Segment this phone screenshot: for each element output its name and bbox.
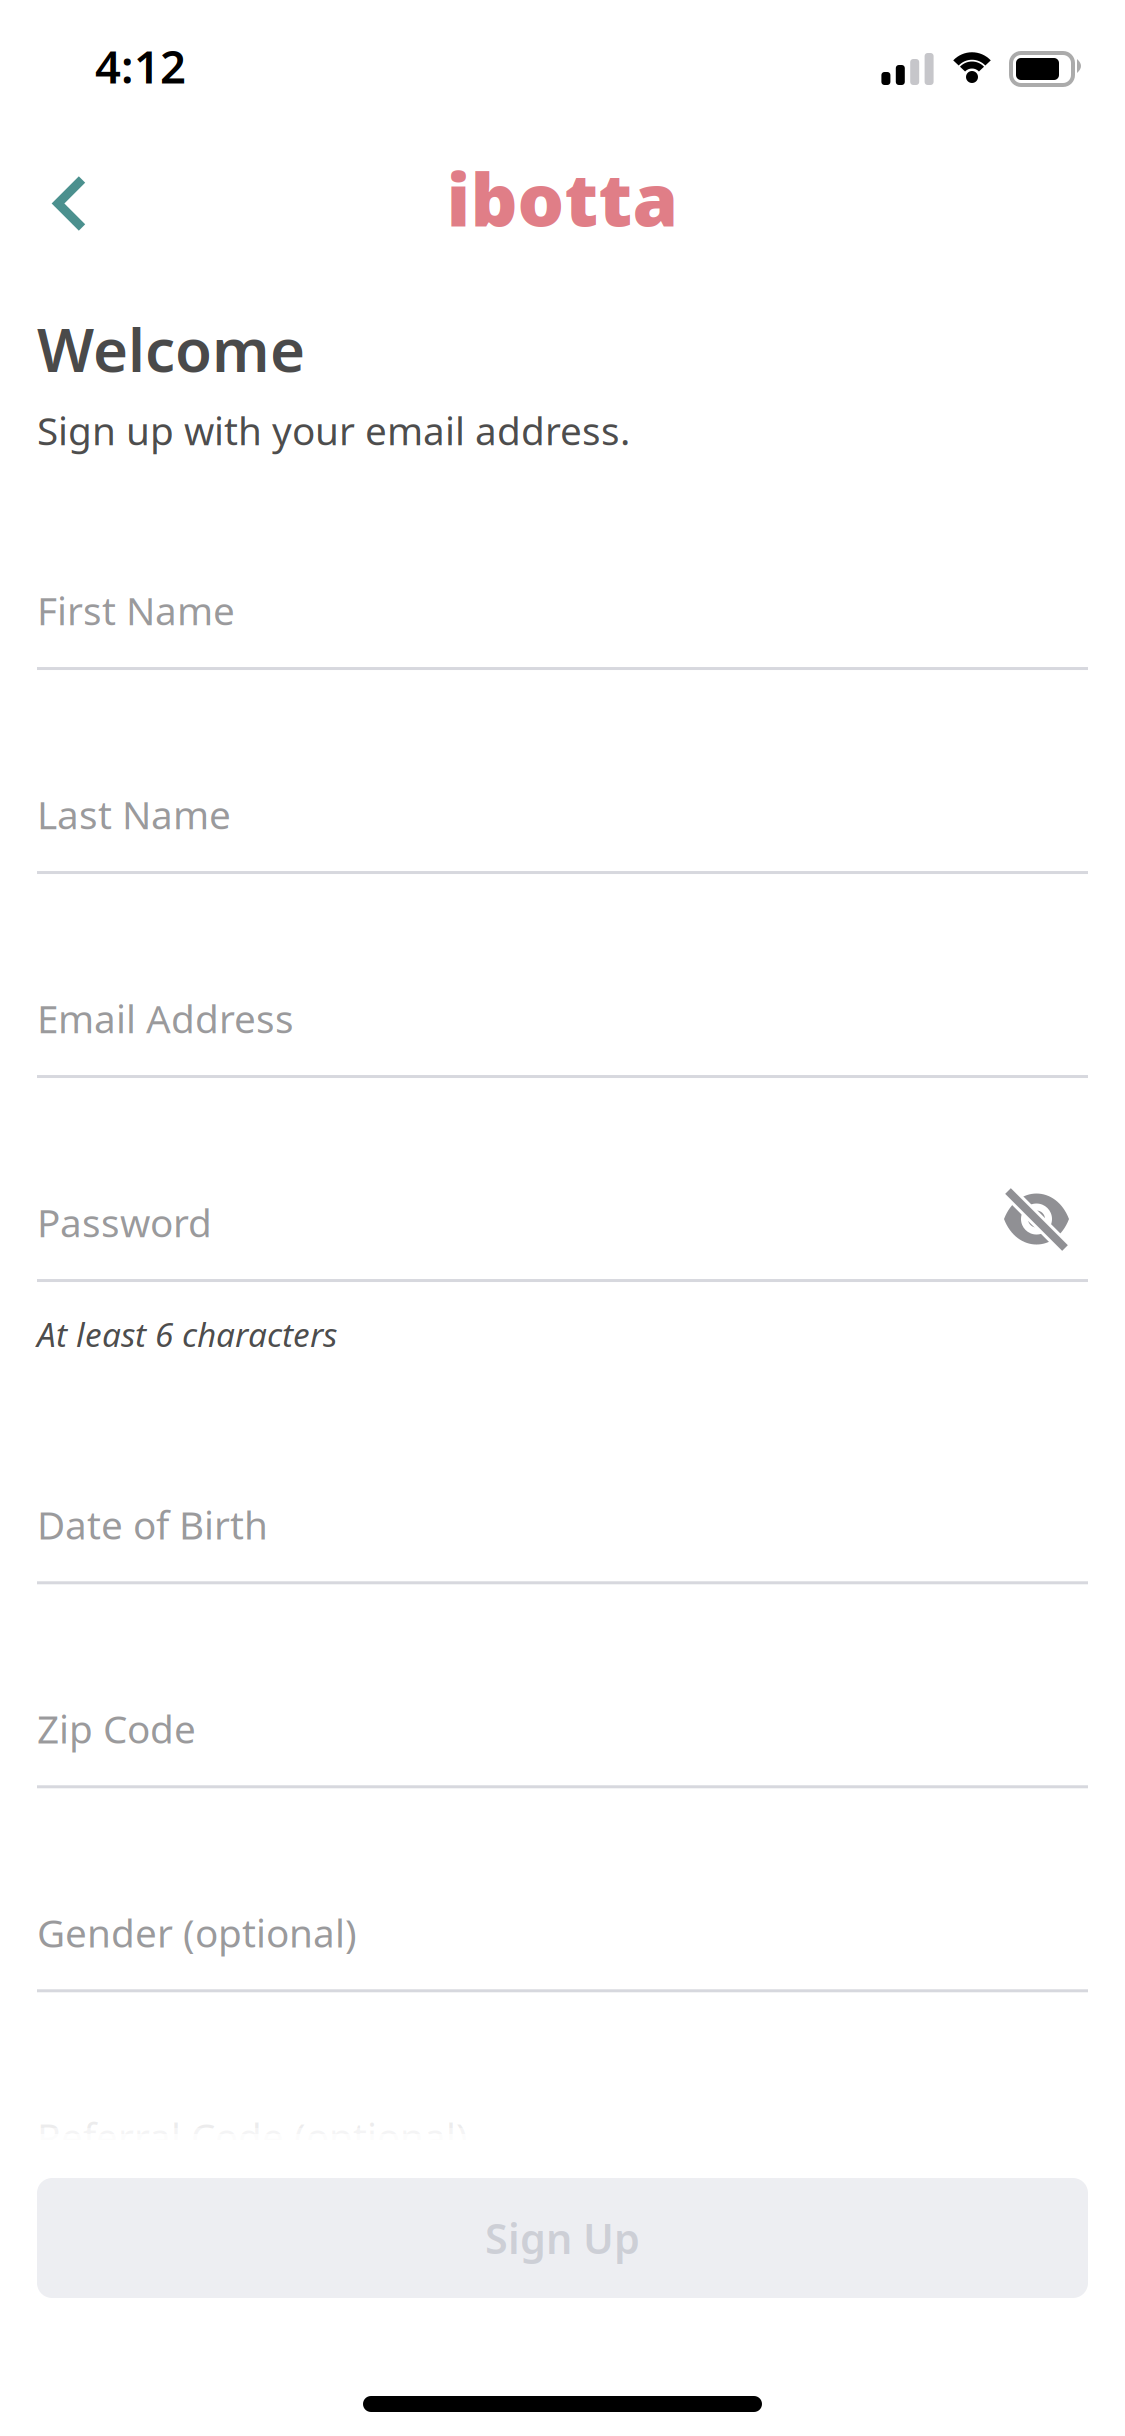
staticText: Last Name: [37, 789, 231, 840]
staticText: Sign Up: [485, 2211, 640, 2265]
staticText: 4:12: [95, 36, 186, 96]
staticText: At least 6 characters: [37, 1312, 337, 1356]
staticText: Gender (optional): [37, 1907, 357, 1958]
button[interactable]: Back: [0, 149, 127, 246]
staticText: ibotta: [446, 149, 678, 247]
staticText: Sign up with your email address.: [37, 405, 630, 456]
staticText: Email Address: [37, 993, 294, 1044]
staticText: Date of Birth: [37, 1499, 268, 1550]
staticText: Zip Code: [37, 1703, 196, 1754]
button[interactable]: Show password: [978, 1173, 1088, 1282]
staticText: First Name: [37, 585, 235, 636]
staticText: Password: [37, 1197, 212, 1248]
button[interactable]: Sign Up: [37, 2178, 1088, 2298]
staticText: Welcome: [37, 309, 305, 389]
